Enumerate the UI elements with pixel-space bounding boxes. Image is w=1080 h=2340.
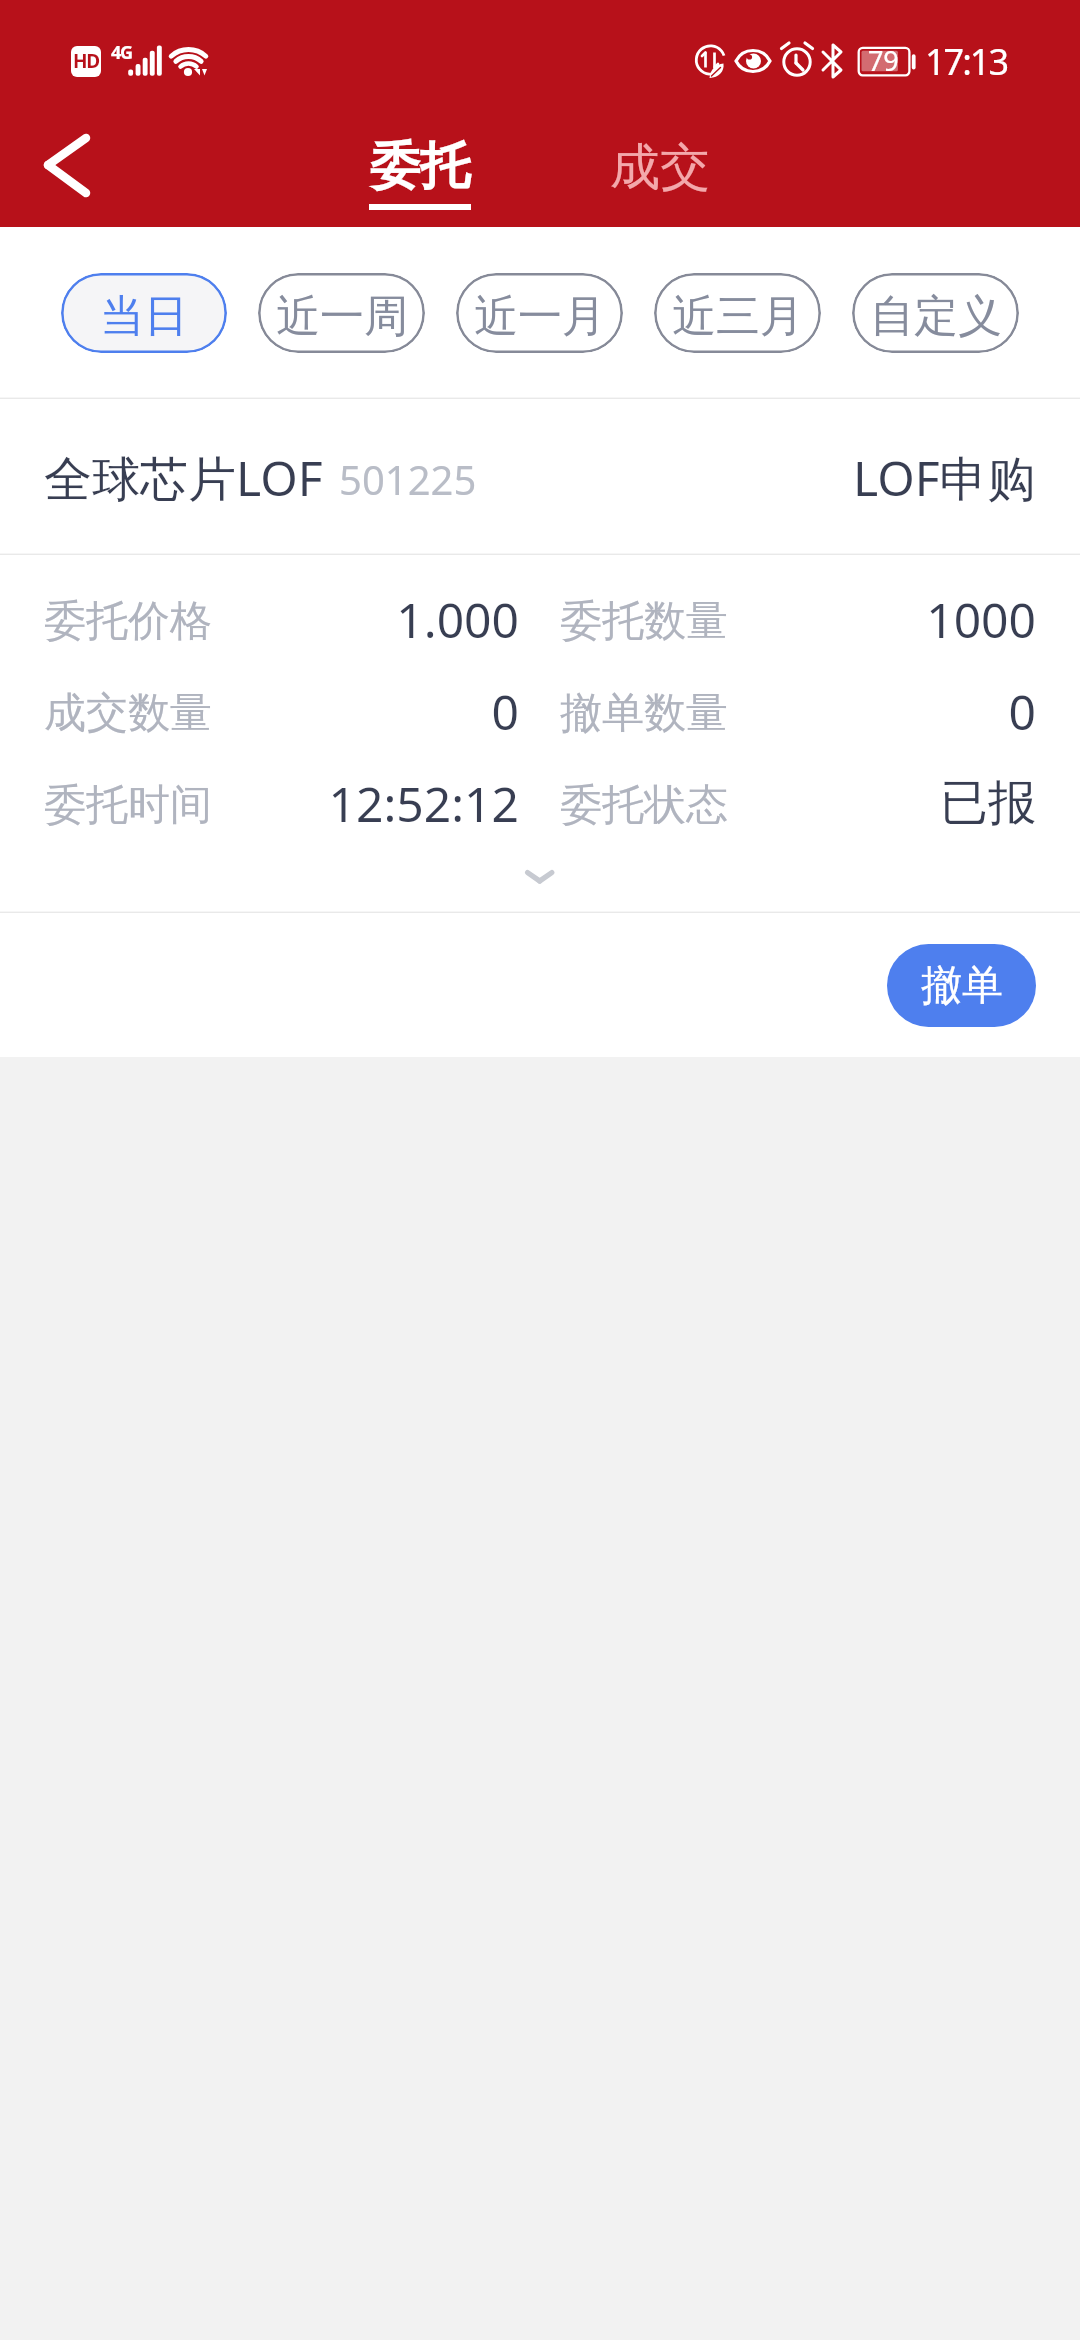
staticText: 委托价格 xyxy=(44,595,212,648)
staticText: 撤单数量 xyxy=(560,687,728,740)
staticText: 已报 xyxy=(728,773,1036,833)
staticText: 委托状态 xyxy=(560,779,728,832)
staticText: 0 xyxy=(212,679,519,744)
button[interactable]: Back xyxy=(24,117,120,213)
staticText: 4G xyxy=(111,40,132,65)
staticText: 委托 xyxy=(370,135,470,198)
staticText: 近三月 xyxy=(672,289,804,344)
button[interactable]: 委托 xyxy=(340,113,500,217)
staticText: 自定义 xyxy=(870,289,1002,344)
staticText: 委托数量 xyxy=(560,595,728,648)
button[interactable]: 撤单 xyxy=(887,944,1036,1027)
staticText: 委托时间 xyxy=(44,779,212,832)
staticText: 12:52:12 xyxy=(212,771,519,836)
button[interactable]: 当日 xyxy=(61,273,227,353)
staticText: 0 xyxy=(728,679,1036,744)
staticText: 近一周 xyxy=(276,289,408,344)
staticText: HD xyxy=(73,48,99,74)
staticText: 撤单 xyxy=(921,960,1003,1012)
staticText: 501225 xyxy=(339,452,477,506)
staticText: LOF申购 xyxy=(853,445,1036,511)
button[interactable]: 自定义 xyxy=(852,273,1019,353)
button[interactable]: 近三月 xyxy=(654,273,821,353)
button[interactable]: 近一周 xyxy=(258,273,425,353)
staticText: 成交数量 xyxy=(44,687,212,740)
button[interactable]: Expand xyxy=(0,851,1080,913)
staticText: 成交 xyxy=(610,136,710,199)
button[interactable]: 近一月 xyxy=(456,273,623,353)
staticText: 近一月 xyxy=(474,289,606,344)
staticText: 1.000 xyxy=(212,587,519,652)
staticText: 当日 xyxy=(100,289,188,344)
staticText: 17:13 xyxy=(925,37,1008,86)
button[interactable]: 成交 xyxy=(580,113,740,217)
staticText: 1000 xyxy=(728,587,1036,652)
button[interactable]: 全球芯片LOF xyxy=(0,399,1080,555)
staticText: 79 xyxy=(868,42,899,79)
staticText: 全球芯片LOF xyxy=(44,445,323,511)
